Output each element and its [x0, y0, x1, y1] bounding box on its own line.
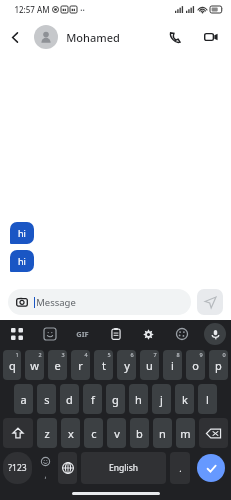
button[interactable]: h [129, 384, 148, 414]
staticText: 5 [107, 351, 111, 358]
button[interactable]: f [83, 384, 102, 414]
button[interactable]: p [209, 350, 228, 380]
staticText: i [171, 358, 174, 373]
button[interactable]: k [175, 384, 194, 414]
staticText: c [91, 426, 97, 441]
staticText: 4 [84, 351, 88, 358]
button[interactable]: s [37, 384, 56, 414]
staticText: 3 [61, 351, 65, 358]
staticText: 2 [38, 351, 42, 358]
staticText: n [159, 426, 166, 441]
staticText: u [146, 358, 153, 373]
button[interactable]: v [107, 418, 126, 448]
staticText: p [215, 358, 222, 373]
staticText: y [124, 358, 130, 373]
staticText: o [192, 358, 199, 373]
button[interactable]: j [152, 384, 171, 414]
button[interactable]: Language [58, 452, 77, 484]
staticText: w [30, 358, 39, 373]
button[interactable]: hi [10, 250, 34, 272]
staticText: English [109, 462, 138, 474]
button[interactable]: Apps [0, 320, 33, 348]
staticText: j [160, 392, 163, 407]
staticText: . [179, 462, 182, 474]
button[interactable]: m [176, 418, 195, 448]
staticText: 0 [222, 351, 226, 358]
staticText: h [135, 392, 142, 407]
button[interactable]: g [106, 384, 125, 414]
button[interactable]: t [94, 350, 113, 380]
staticText: e [54, 358, 61, 373]
button[interactable]: Voice input [204, 323, 226, 345]
staticText: q [9, 358, 16, 373]
button[interactable]: Clipboard [99, 320, 132, 348]
button[interactable]: Stickers [33, 320, 66, 348]
staticText: k [182, 392, 188, 407]
button[interactable]: Back [0, 22, 30, 52]
staticText: ·· [80, 4, 85, 15]
button[interactable]: x [61, 418, 80, 448]
button[interactable]: u [140, 350, 159, 380]
staticText: s [44, 392, 50, 407]
staticText: l [206, 392, 209, 407]
button[interactable]: Video call [195, 21, 227, 53]
staticText: z [44, 426, 50, 441]
button[interactable]: l [198, 384, 217, 414]
button[interactable]: English [81, 452, 166, 484]
staticText: r [78, 358, 83, 373]
button[interactable]: ?123 [3, 452, 32, 484]
staticText: 1 [15, 351, 19, 358]
button[interactable]: hi [10, 222, 34, 244]
button[interactable]: n [153, 418, 172, 448]
button[interactable]: e [48, 350, 67, 380]
staticText: v [114, 426, 120, 441]
staticText: d [66, 392, 73, 407]
button[interactable]: z [37, 418, 57, 448]
staticText: x [68, 426, 74, 441]
button[interactable]: Emoji and comma [36, 452, 54, 484]
button[interactable]: Enter [197, 454, 225, 482]
button[interactable]: GIF [66, 320, 99, 348]
staticText: GIF [76, 329, 89, 339]
button[interactable]: y [117, 350, 136, 380]
staticText: ?123 [8, 462, 27, 474]
button[interactable]: q [3, 350, 21, 380]
staticText: Mohamed [66, 30, 120, 45]
staticText: 12:57 AM [14, 4, 50, 15]
staticText: 7 [153, 351, 157, 358]
staticText: g [112, 392, 119, 407]
button[interactable]: r [71, 350, 90, 380]
button[interactable]: Call [159, 21, 191, 53]
button[interactable]: Send [197, 289, 223, 315]
staticText: 8 [176, 351, 180, 358]
button[interactable]: d [60, 384, 79, 414]
button[interactable]: b [130, 418, 149, 448]
button[interactable]: w [25, 350, 44, 380]
staticText: hi [18, 227, 26, 239]
button[interactable]: a [14, 384, 33, 414]
button[interactable]: o [186, 350, 205, 380]
button[interactable]: Themes [165, 320, 198, 348]
staticText: Message [36, 296, 76, 309]
button[interactable]: i [163, 350, 182, 380]
button[interactable]: Shift [3, 418, 33, 448]
staticText: t [102, 358, 106, 373]
staticText: 9 [199, 351, 203, 358]
button[interactable]: Message [8, 289, 191, 315]
button[interactable]: c [84, 418, 103, 448]
staticText: , [44, 469, 47, 480]
staticText: f [91, 392, 95, 407]
button[interactable]: Backspace [199, 418, 228, 448]
button[interactable]: Settings [132, 320, 165, 348]
staticText: m [180, 426, 191, 441]
staticText: hi [18, 255, 26, 267]
staticText: b [136, 426, 143, 441]
button[interactable]: . [170, 452, 190, 484]
staticText: a [20, 392, 27, 407]
staticText: 6 [130, 351, 134, 358]
